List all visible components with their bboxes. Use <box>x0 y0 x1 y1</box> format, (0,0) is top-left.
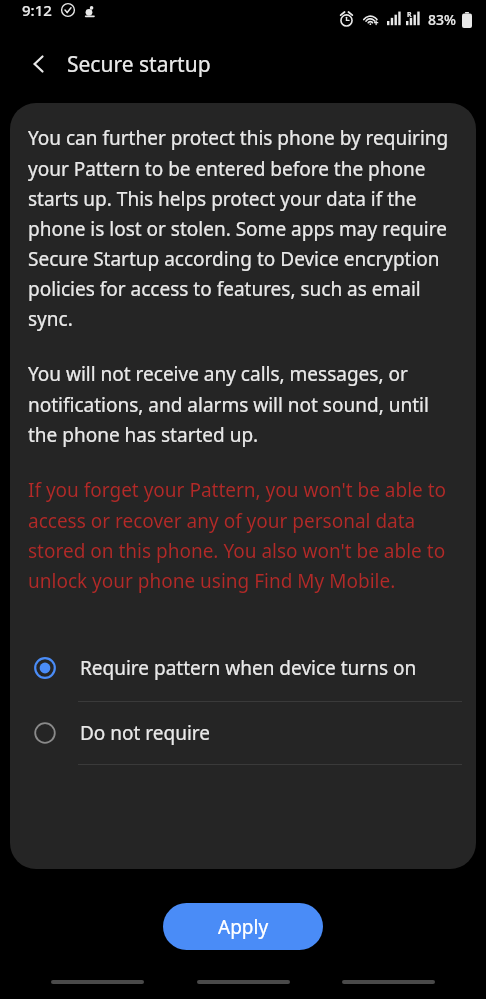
staticText: Do not require <box>80 720 211 746</box>
staticText: You will not receive any calls, messages… <box>28 361 458 447</box>
staticText: You can further protect this phone by re… <box>28 125 458 331</box>
button[interactable]: Navigation <box>196 969 291 995</box>
button[interactable]: Navigation <box>50 969 145 995</box>
button[interactable]: Back <box>18 43 60 85</box>
staticText: Secure startup <box>67 50 211 79</box>
staticText: Require pattern when device turns on <box>80 655 417 681</box>
button[interactable]: Apply <box>163 903 323 950</box>
staticText: Apply <box>218 914 269 940</box>
button[interactable]: Require pattern when device turns on <box>10 635 476 701</box>
staticText: If you forget your Pattern, you won't be… <box>28 477 458 593</box>
staticText: R <box>407 10 412 20</box>
button[interactable]: Do not require <box>10 702 476 764</box>
button[interactable]: Navigation <box>341 969 436 995</box>
staticText: 9:12 <box>22 0 52 20</box>
staticText: 83% <box>428 10 456 29</box>
